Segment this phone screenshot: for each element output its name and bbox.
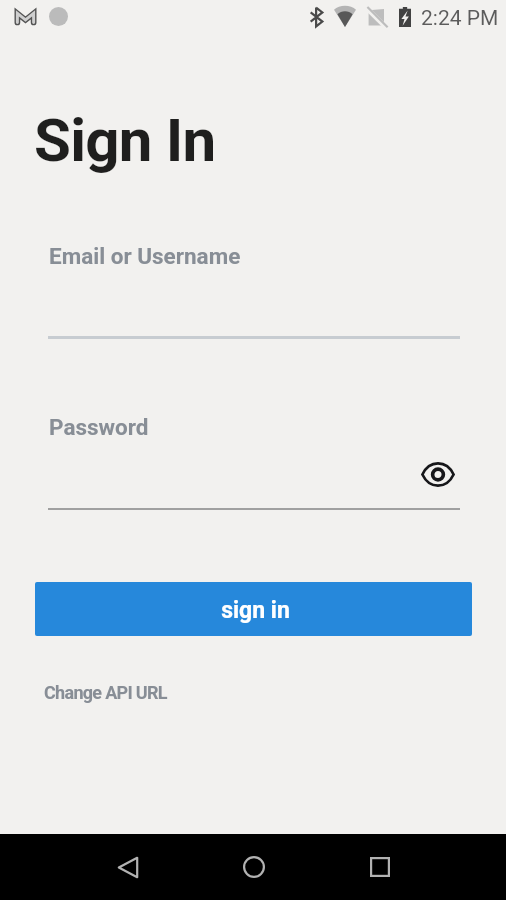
staticText: Password [49,414,149,440]
staticText: Sign In [34,105,216,175]
button[interactable]: Show password [415,451,461,497]
button[interactable]: Recent apps [349,836,411,898]
button[interactable]: Change API URL [44,682,167,703]
staticText: Email or Username [49,243,241,269]
staticText: sign in [221,597,290,624]
staticText: Change API URL [44,682,167,703]
button[interactable]: Back [97,836,159,898]
button[interactable]: Email or Username [48,232,460,339]
button[interactable]: Home [223,836,285,898]
button[interactable]: sign in [35,582,472,636]
staticText: 2:24 PM [421,6,499,31]
button[interactable]: Password [48,403,460,510]
